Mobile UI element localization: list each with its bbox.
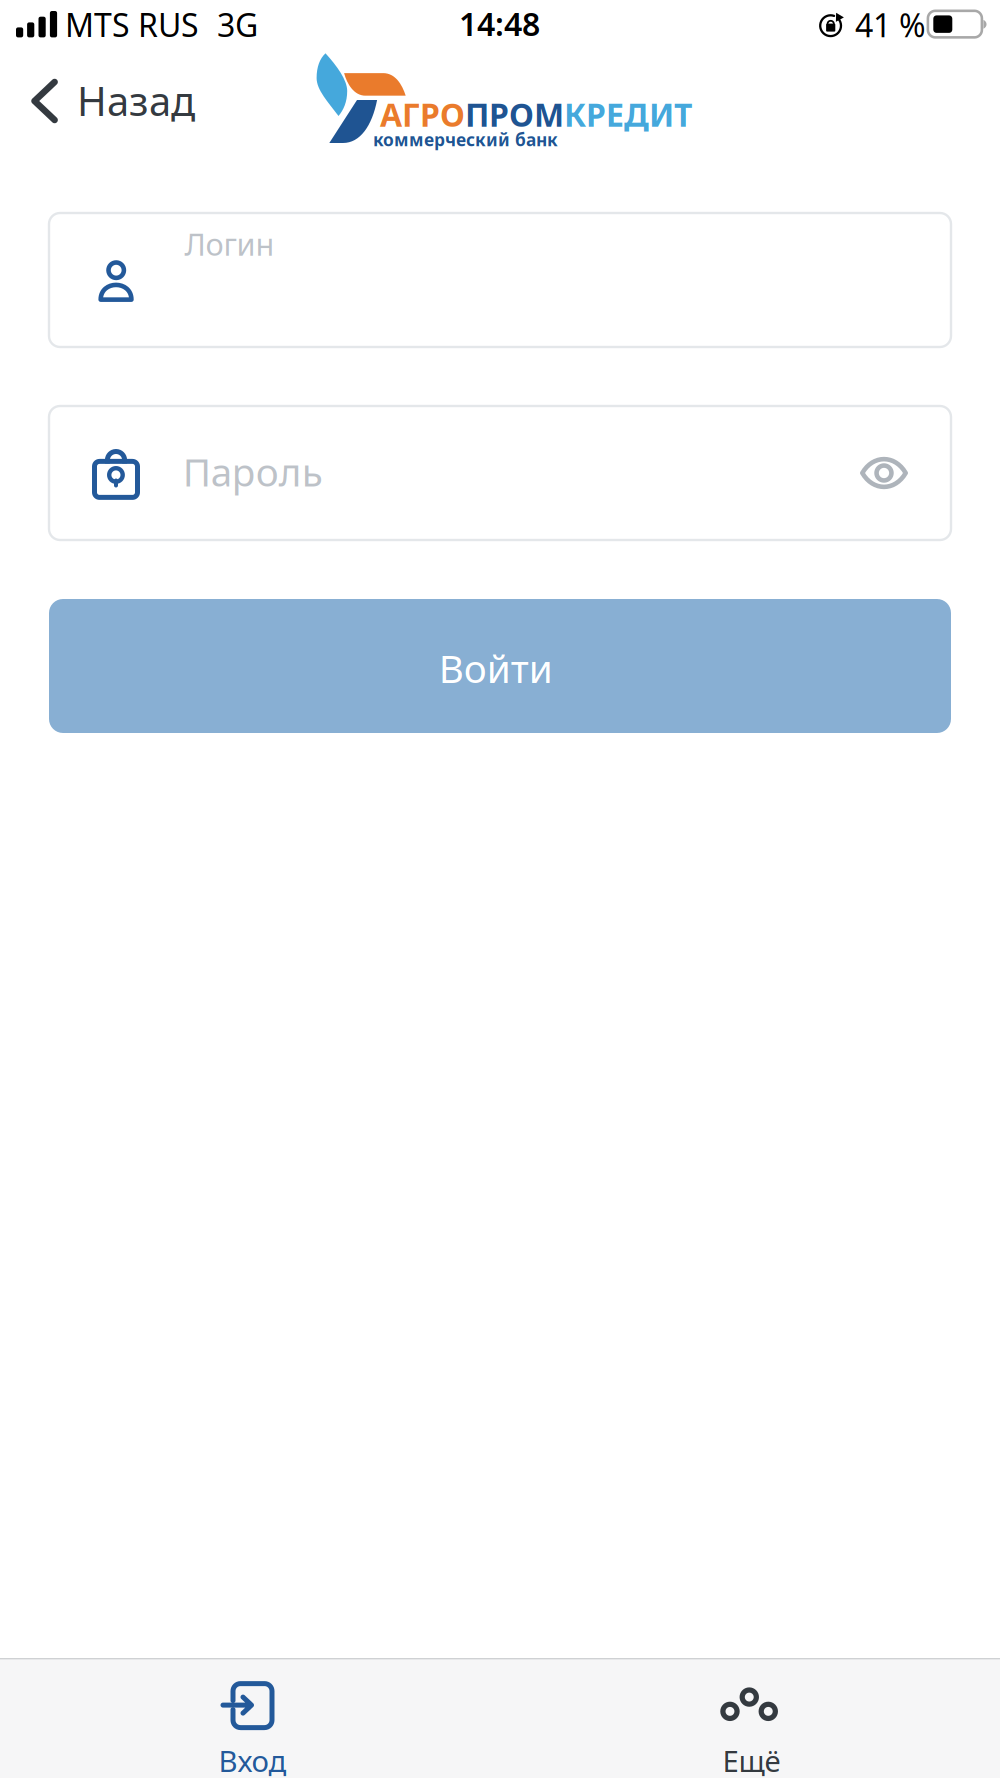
staticText: Логин — [184, 223, 274, 264]
staticText: 3G — [217, 3, 258, 46]
staticText: ПРОМ — [465, 93, 564, 135]
button[interactable]: Вход — [0, 1660, 500, 1778]
staticText: коммерческий банк — [373, 128, 558, 151]
staticText: Ещё — [722, 1741, 780, 1778]
staticText: 14:48 — [459, 2, 540, 45]
button[interactable]: Назад — [20, 64, 242, 136]
button[interactable]: Ещё — [500, 1660, 1000, 1778]
staticText: MTS RUS — [65, 3, 199, 46]
staticText: Назад — [77, 74, 195, 127]
button[interactable]: Войти — [49, 599, 951, 733]
staticText: АГРО — [380, 93, 465, 135]
staticText: Вход — [218, 1741, 286, 1778]
staticText: Войти — [439, 642, 553, 693]
staticText: КРЕДИТ — [564, 93, 692, 135]
staticText: Пароль — [183, 446, 323, 497]
staticText: 41 % — [855, 4, 926, 46]
button[interactable]: Показать пароль — [838, 434, 930, 512]
